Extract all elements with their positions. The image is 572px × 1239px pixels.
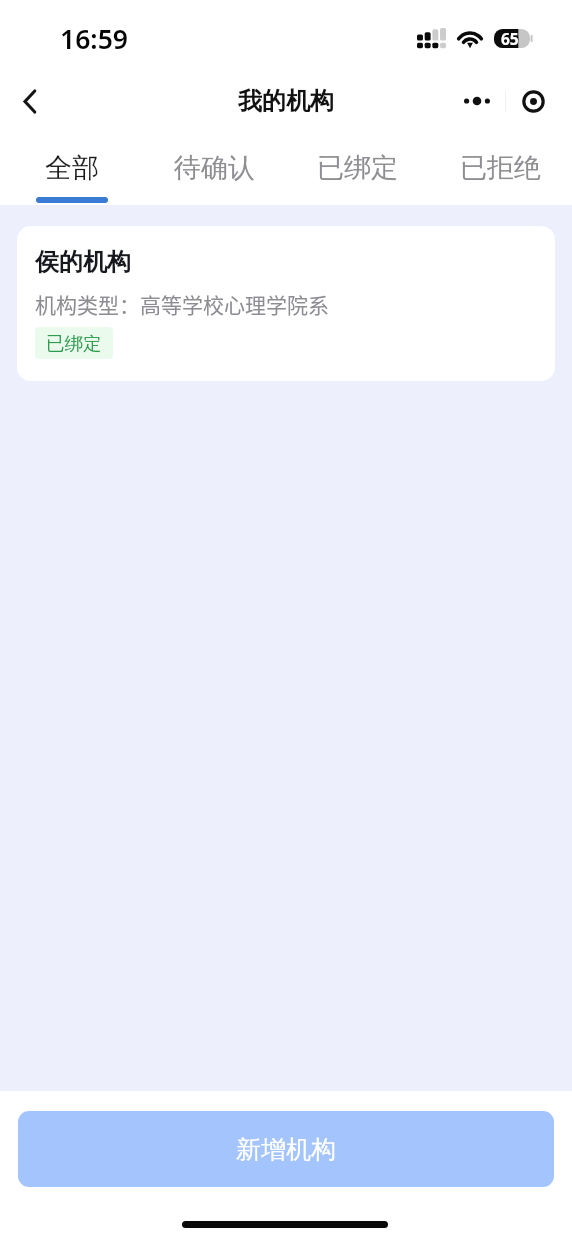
button[interactable]: 已拒绝	[429, 132, 572, 205]
button[interactable]: 已绑定	[286, 132, 429, 205]
button[interactable]: 待确认	[143, 132, 286, 205]
button[interactable]: 全部	[0, 132, 143, 205]
staticText: 全部	[45, 151, 99, 185]
button[interactable]: 侯的机构	[17, 226, 555, 381]
staticText: 我的机构	[238, 86, 334, 116]
staticText: 待确认	[174, 151, 255, 185]
staticText: 机构类型：高等学校心理学院系	[35, 289, 329, 319]
staticText: 16:59	[60, 21, 128, 57]
button[interactable]: More options	[452, 79, 502, 123]
staticText: 已拒绝	[460, 151, 541, 185]
button[interactable]: 新增机构	[18, 1111, 554, 1187]
staticText: 65	[501, 28, 519, 47]
staticText: 新增机构	[236, 1134, 336, 1165]
staticText: 侯的机构	[35, 247, 131, 277]
staticText: 已绑定	[46, 332, 102, 355]
button[interactable]: Back	[3, 74, 57, 128]
button[interactable]: Close mini program	[512, 79, 555, 123]
staticText: 已绑定	[317, 151, 398, 185]
